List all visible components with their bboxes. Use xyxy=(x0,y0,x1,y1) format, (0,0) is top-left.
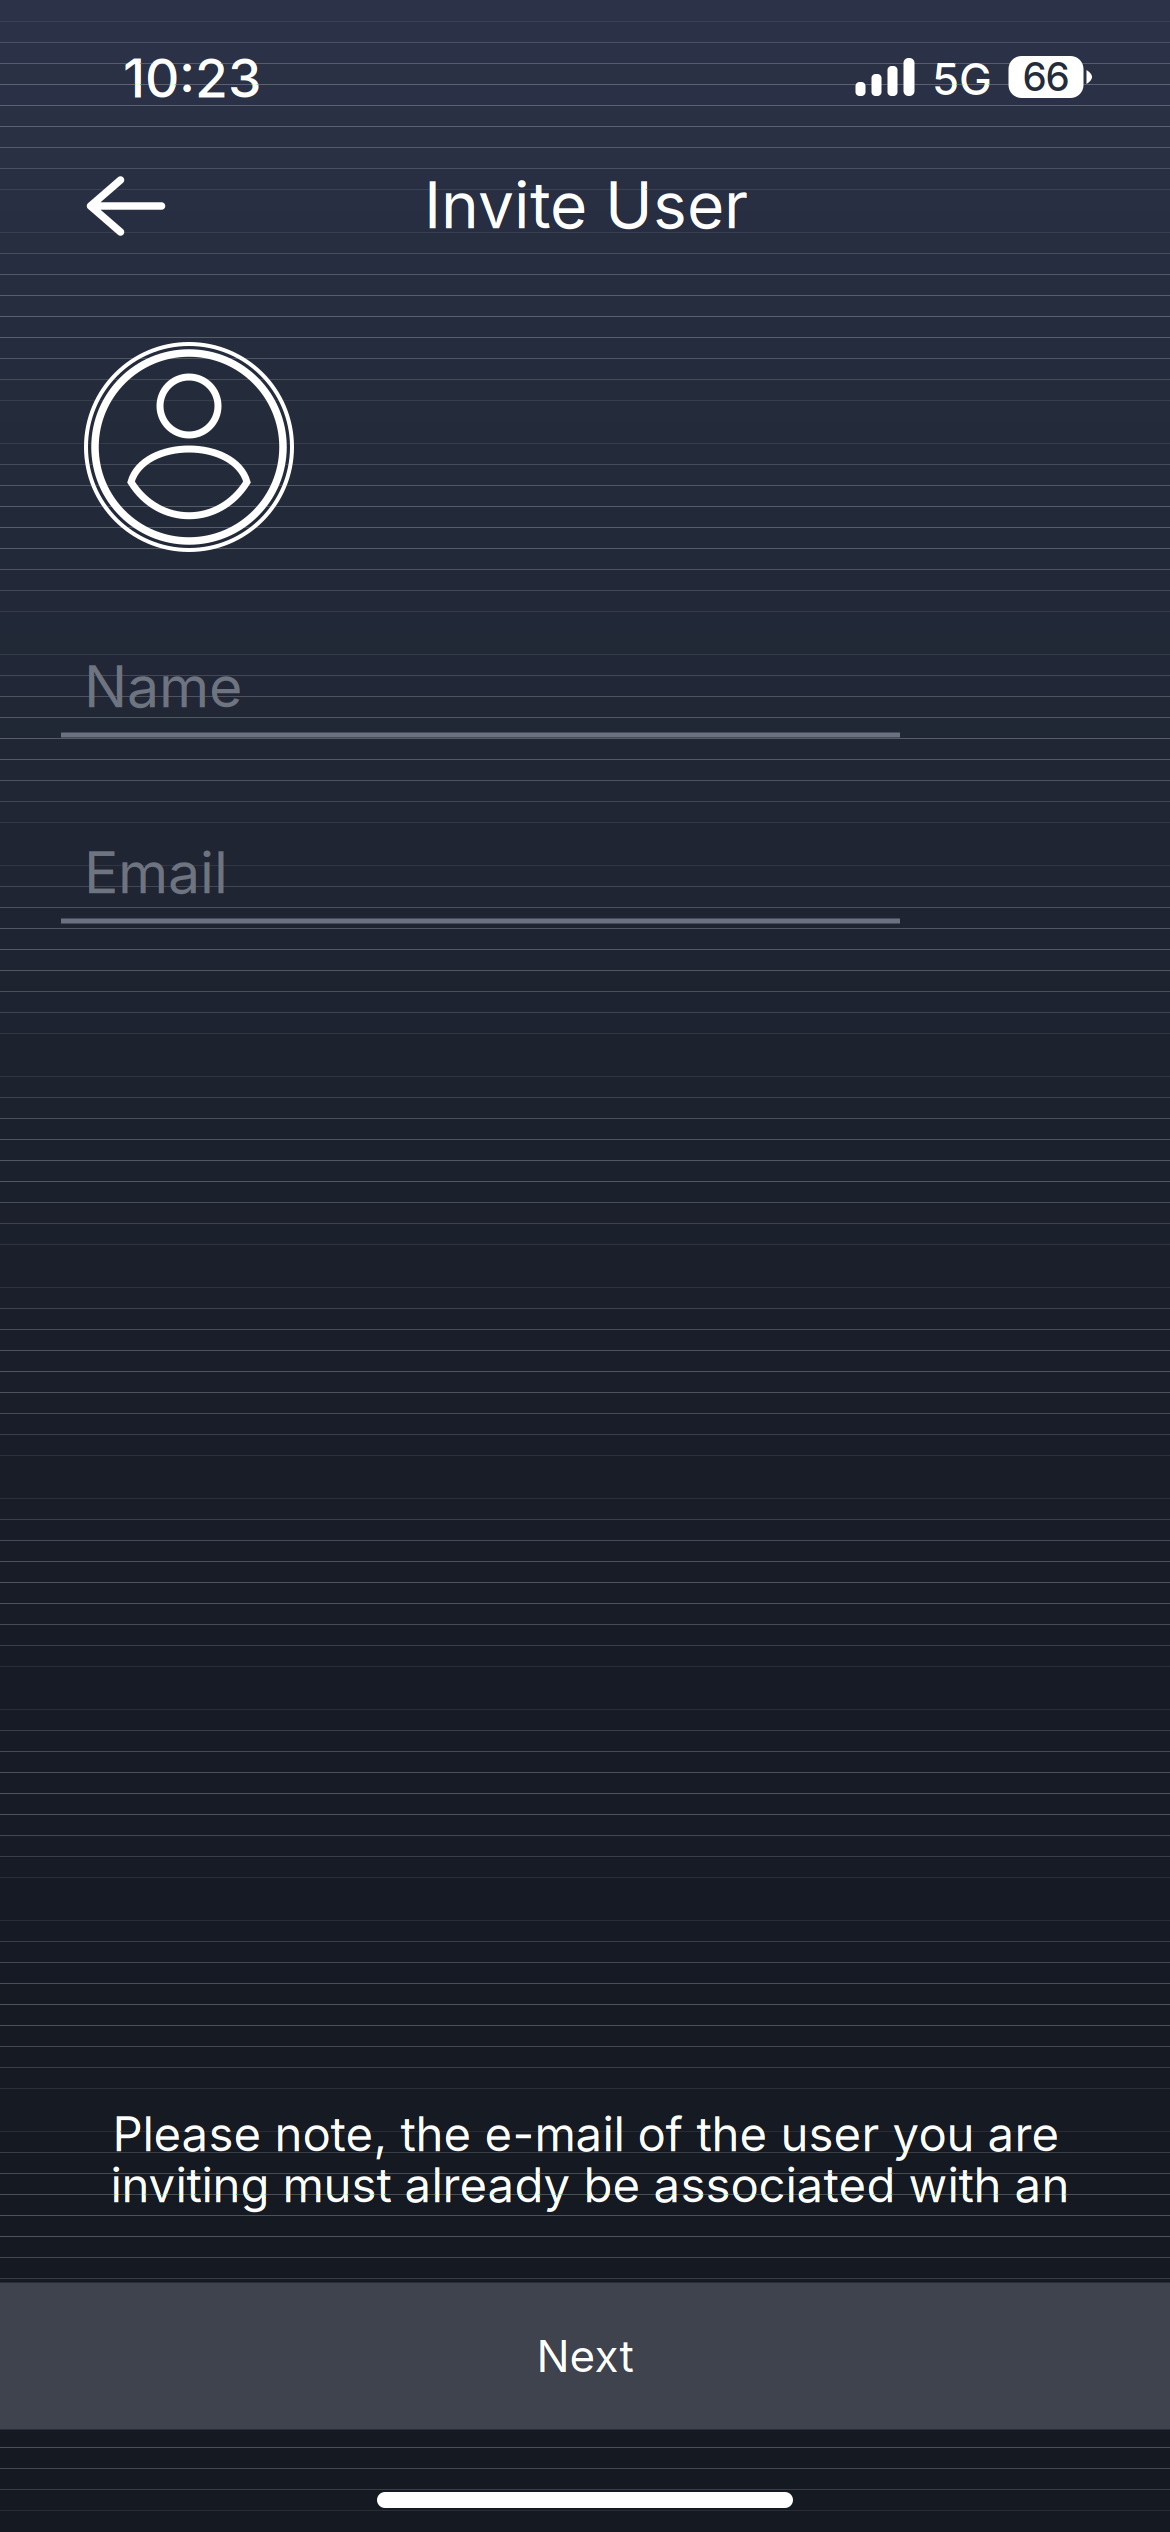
button[interactable]: Name xyxy=(61,662,900,737)
staticText: Invite User xyxy=(424,166,748,244)
button[interactable]: Back xyxy=(51,150,201,262)
staticText: Email xyxy=(84,838,228,907)
staticText: Next xyxy=(536,2329,633,2383)
staticText: Please note, the e-mail of the user you … xyxy=(112,2105,1059,2163)
button[interactable]: Email xyxy=(61,848,900,923)
staticText: 10:23 xyxy=(123,46,261,110)
staticText: 66 xyxy=(1023,54,1069,100)
staticText: 5G xyxy=(932,52,992,106)
button[interactable]: Next xyxy=(0,2282,1170,2429)
staticText: inviting must already be associated with… xyxy=(110,2156,1069,2214)
staticText: Name xyxy=(84,652,242,721)
